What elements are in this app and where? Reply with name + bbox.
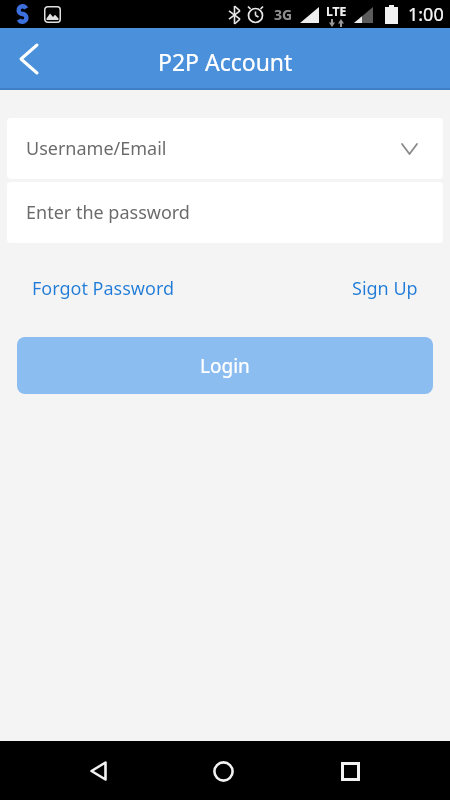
- staticText: 1:00: [408, 2, 444, 27]
- button[interactable]: [21, 45, 37, 73]
- staticText: 3G: [274, 5, 293, 24]
- button[interactable]: Forgot Password: [32, 276, 175, 301]
- button[interactable]: Sign Up: [352, 276, 418, 301]
- staticText: Enter the password: [26, 200, 190, 225]
- staticText: P2P Account: [158, 46, 293, 77]
- button[interactable]: [199, 747, 247, 795]
- button[interactable]: Enter the password: [7, 182, 443, 243]
- button[interactable]: [326, 747, 374, 795]
- staticText: LTE: [326, 3, 347, 19]
- staticText: Login: [200, 353, 250, 379]
- staticText: Username/Email: [26, 136, 402, 161]
- button[interactable]: [74, 747, 122, 795]
- button[interactable]: Login: [17, 337, 433, 394]
- button[interactable]: Username/Email: [7, 118, 443, 179]
